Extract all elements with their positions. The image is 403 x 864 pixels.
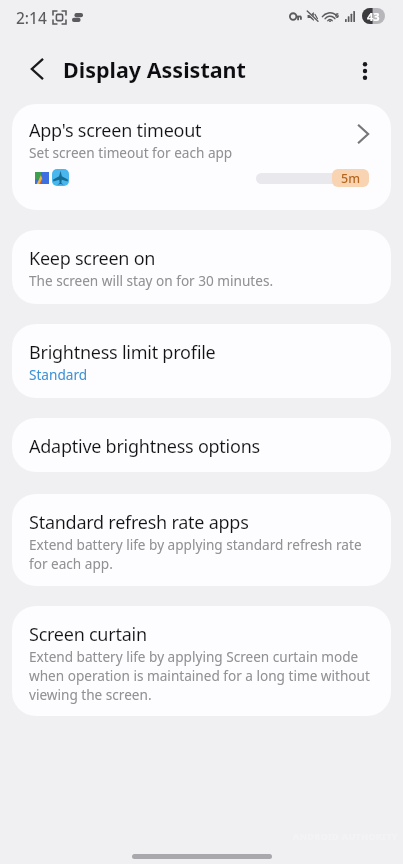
staticText: Standard refresh rate apps (29, 510, 249, 535)
button[interactable]: Back (13, 45, 61, 93)
staticText: Set screen timeout for each app (29, 143, 233, 162)
staticText: The screen will stay on for 30 minutes. (29, 271, 274, 290)
staticText: Extend battery life by applying standard… (29, 535, 374, 573)
staticText: 2:14 (16, 7, 47, 28)
staticText: Display Assistant (63, 55, 246, 84)
staticText: Screen curtain (29, 622, 147, 647)
button[interactable]: Brightness limit profile (12, 324, 391, 398)
staticText: App's screen timeout (29, 118, 202, 143)
staticText: Adaptive brightness options (29, 434, 260, 459)
button[interactable]: Adaptive brightness options (12, 418, 391, 472)
button[interactable]: App's screen timeout (12, 104, 391, 210)
staticText: Keep screen on (29, 246, 156, 271)
button[interactable]: More options (341, 47, 389, 95)
staticText: 43 (367, 9, 380, 24)
button[interactable]: Keep screen on (12, 230, 391, 304)
staticText: 5m (341, 170, 360, 187)
button[interactable]: Standard refresh rate apps (12, 494, 391, 586)
staticText: 6 (335, 11, 340, 21)
staticText: Brightness limit profile (29, 340, 216, 365)
staticText: Standard (29, 365, 88, 384)
button[interactable]: Screen curtain (12, 606, 391, 716)
staticText: Extend battery life by applying Screen c… (29, 647, 374, 704)
